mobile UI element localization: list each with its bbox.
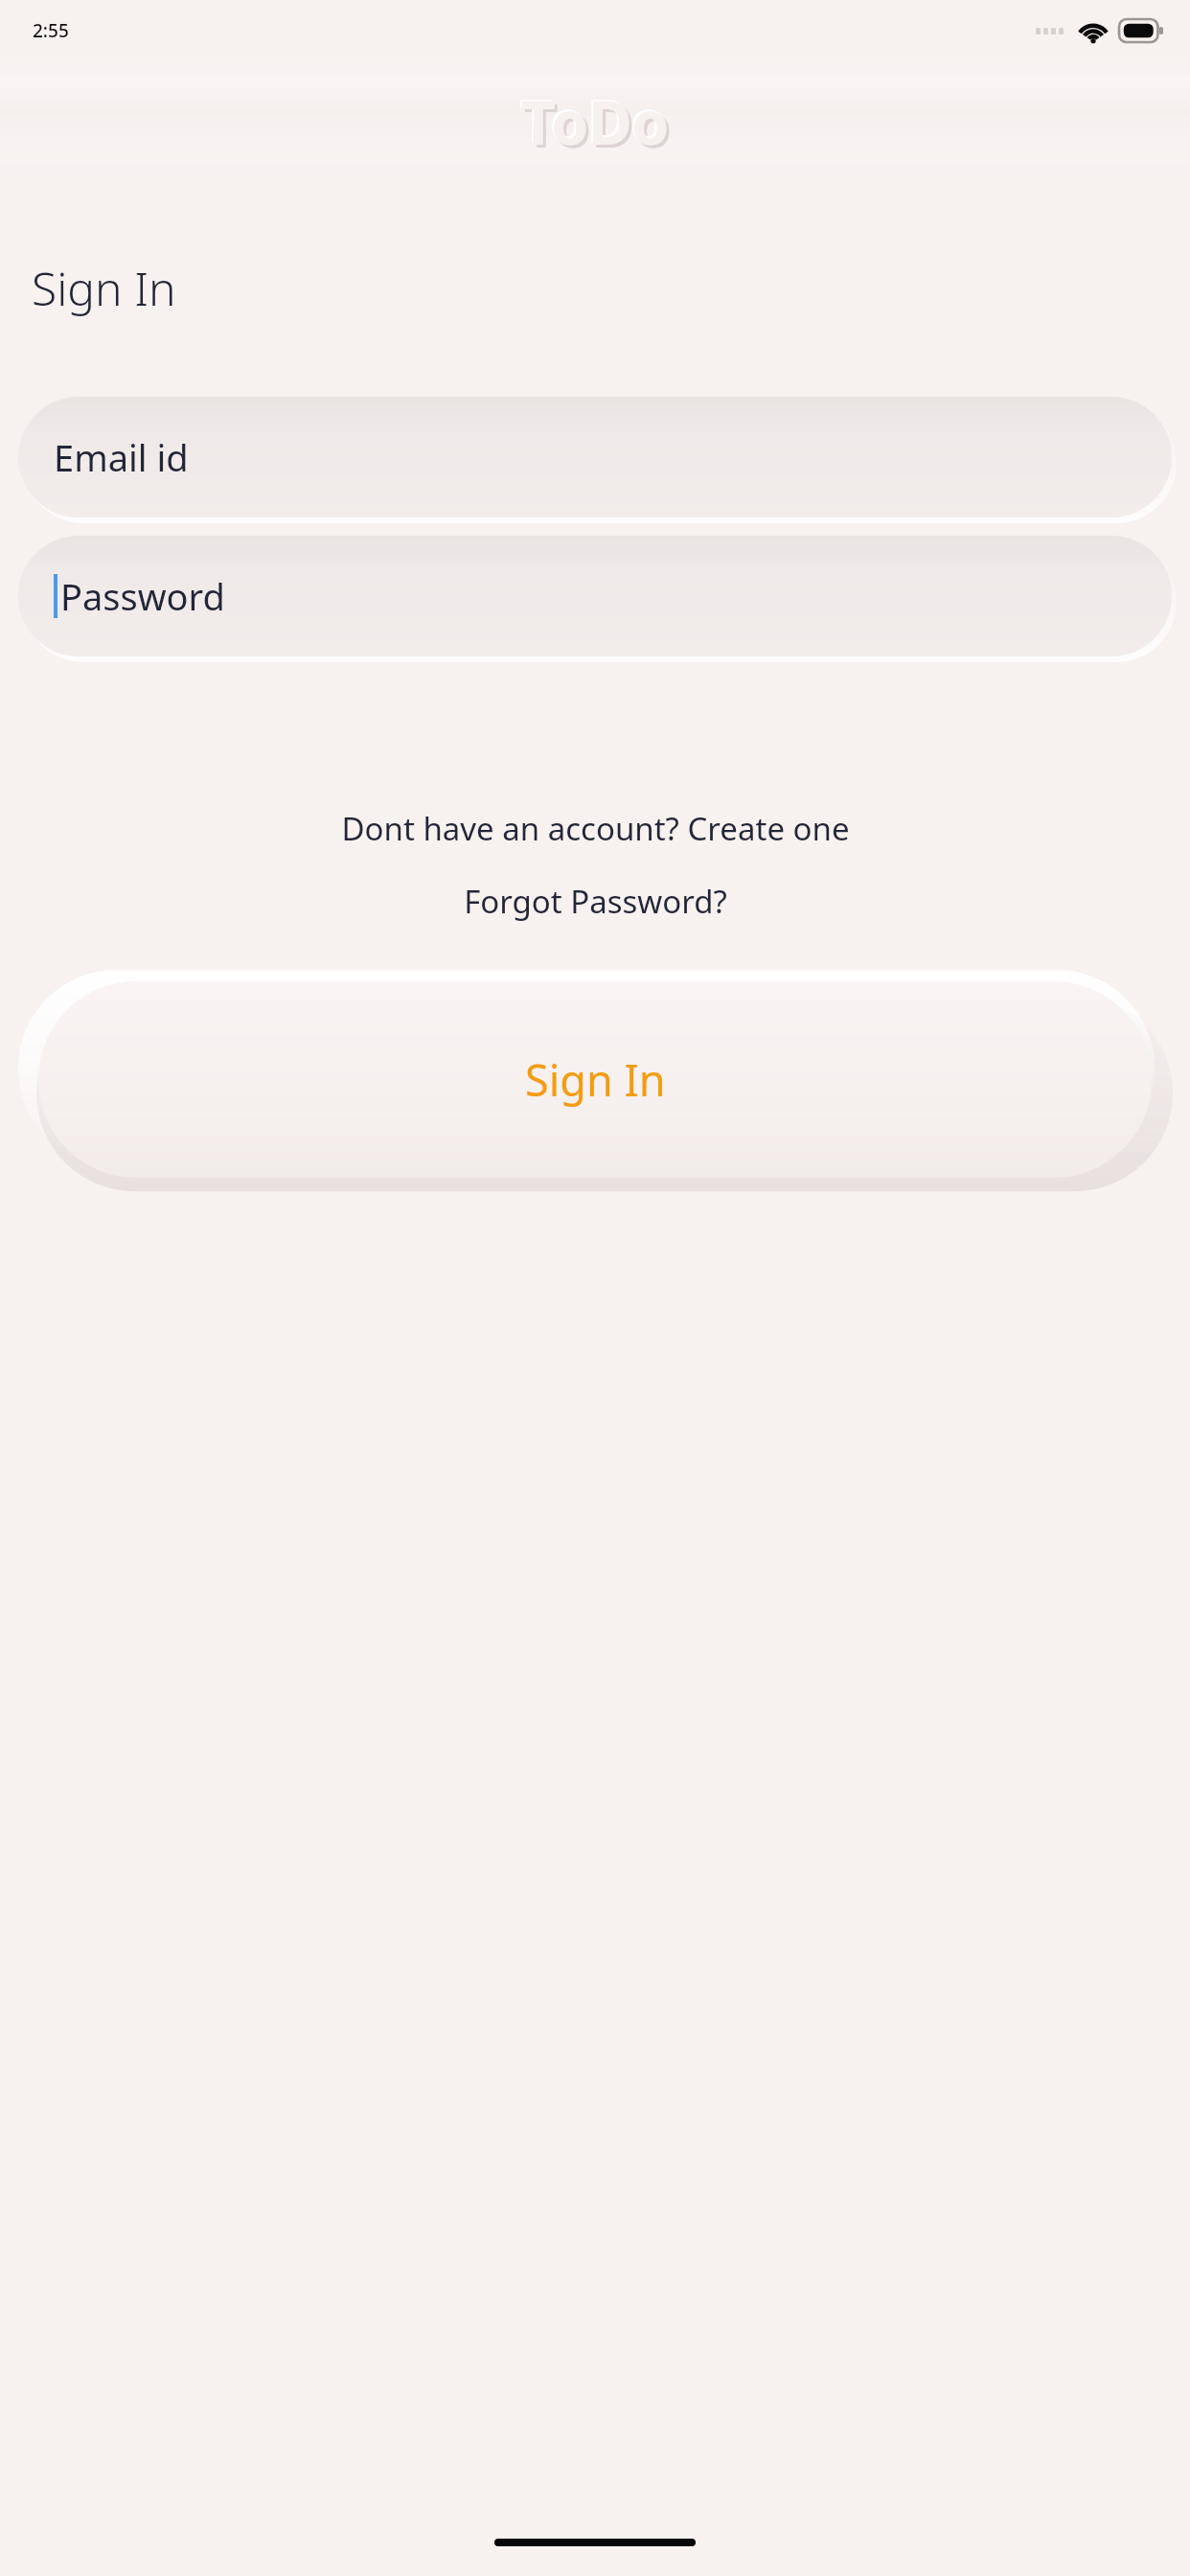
staticText: Sign In — [32, 257, 176, 319]
button[interactable]: Password — [18, 536, 1172, 656]
staticText: Dont have an account? Create one — [341, 807, 850, 850]
button[interactable]: Dont have an account? Create one — [0, 800, 1190, 856]
staticText: 2:55 — [33, 18, 69, 43]
staticText: Forgot Password? — [464, 880, 727, 923]
other: Wi-Fi — [1077, 18, 1110, 43]
staticText: ToDo — [519, 80, 668, 154]
other: Battery full — [1119, 19, 1163, 42]
staticText: ToDo — [521, 81, 670, 156]
staticText: Email id — [54, 432, 189, 482]
button[interactable]: Forgot Password? — [0, 873, 1190, 929]
staticText: Password — [60, 571, 225, 621]
button[interactable]: Sign In — [38, 981, 1152, 1178]
staticText: ToDo — [524, 84, 673, 159]
staticText: Sign In — [525, 1050, 666, 1109]
button[interactable]: Email id — [18, 397, 1172, 517]
